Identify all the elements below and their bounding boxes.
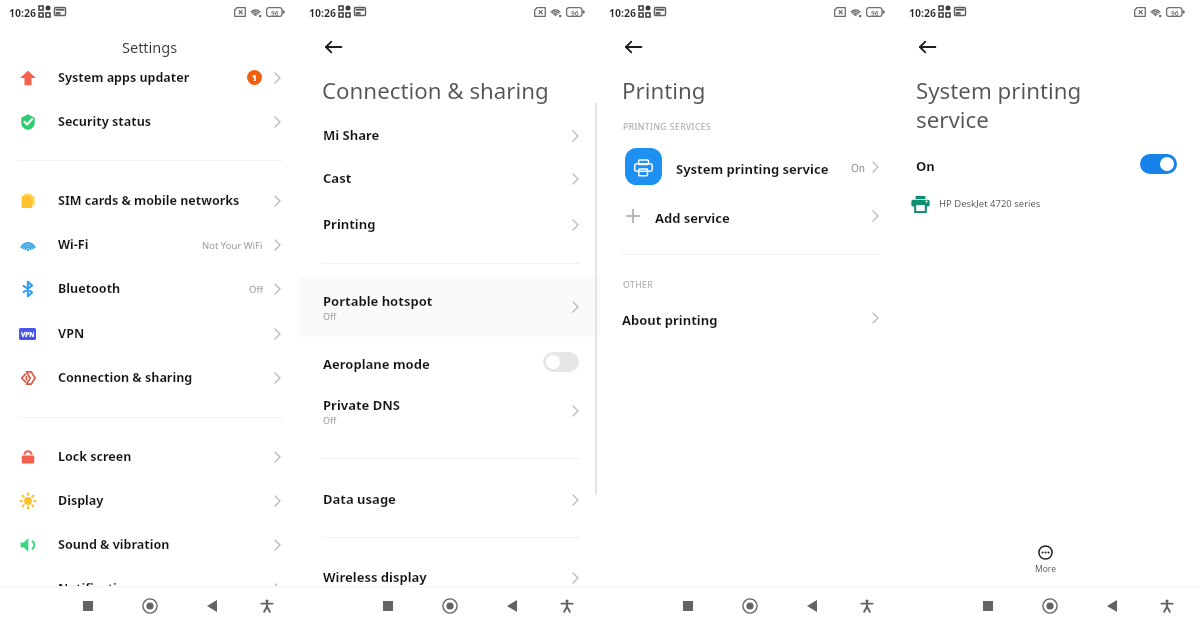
staticText: Not Your WiFi bbox=[202, 239, 263, 252]
staticText: Printing bbox=[323, 215, 376, 233]
staticText: System printing service bbox=[916, 75, 1082, 135]
staticText: 10:26 bbox=[609, 6, 636, 20]
staticText: Off bbox=[249, 283, 263, 296]
staticText: Settings bbox=[122, 37, 178, 57]
staticText: 96 bbox=[571, 9, 579, 18]
button[interactable]: System apps updater bbox=[0, 56, 300, 100]
staticText: Security status bbox=[58, 113, 152, 130]
button[interactable]: Back bbox=[319, 33, 347, 61]
button[interactable]: Recents bbox=[968, 587, 1008, 625]
button[interactable]: Back bbox=[913, 33, 941, 61]
staticText: Wireless display bbox=[323, 568, 427, 586]
button[interactable]: Lock screen bbox=[0, 435, 300, 479]
staticText: System apps updater bbox=[58, 69, 190, 86]
button[interactable]: System printing service bbox=[600, 143, 900, 191]
button[interactable]: Back bbox=[619, 33, 647, 61]
button[interactable]: Home bbox=[1030, 587, 1070, 625]
staticText: VPN bbox=[58, 325, 85, 342]
button[interactable]: Sound & vibration bbox=[0, 523, 300, 567]
staticText: On bbox=[916, 157, 935, 175]
staticText: Printing bbox=[622, 75, 706, 105]
staticText: Private DNS bbox=[323, 396, 401, 414]
staticText: Data usage bbox=[323, 490, 396, 508]
button[interactable]: Display bbox=[0, 479, 300, 523]
staticText: 10:26 bbox=[309, 6, 336, 20]
staticText: OTHER bbox=[623, 279, 653, 291]
staticText: More bbox=[1035, 563, 1056, 575]
button[interactable]: Accessibility bbox=[247, 587, 287, 625]
button[interactable]: VPN bbox=[0, 312, 300, 356]
staticText: Connection & sharing bbox=[322, 75, 549, 105]
button[interactable]: Accessibility bbox=[847, 587, 887, 625]
staticText: Display bbox=[58, 492, 104, 509]
staticText: 96 bbox=[271, 9, 279, 18]
staticText: About printing bbox=[622, 311, 718, 329]
staticText: Cast bbox=[323, 169, 352, 187]
button[interactable]: Home bbox=[430, 587, 470, 625]
button[interactable]: Recents bbox=[668, 587, 708, 625]
staticText: System printing service bbox=[676, 160, 829, 178]
staticText: Off bbox=[323, 414, 337, 426]
button[interactable]: Printing bbox=[300, 203, 600, 247]
staticText: Sound & vibration bbox=[58, 536, 170, 553]
staticText: Add service bbox=[655, 209, 730, 227]
button[interactable]: Bluetooth bbox=[0, 267, 300, 311]
button[interactable]: Back bbox=[492, 587, 532, 625]
button[interactable]: Portable hotspot bbox=[300, 285, 600, 329]
staticText: On bbox=[851, 161, 865, 175]
button[interactable]: Data usage bbox=[300, 478, 600, 522]
button[interactable]: Wireless display bbox=[300, 556, 600, 600]
staticText: PRINTING SERVICES bbox=[623, 121, 712, 133]
button[interactable]: Aeroplane mode bbox=[300, 340, 600, 384]
button[interactable]: Home bbox=[730, 587, 770, 625]
button[interactable]: Connection & sharing bbox=[0, 356, 300, 400]
staticText: Lock screen bbox=[58, 448, 132, 465]
staticText: Wi-Fi bbox=[58, 236, 89, 253]
staticText: 1 bbox=[252, 72, 257, 84]
staticText: Connection & sharing bbox=[58, 369, 193, 386]
button[interactable]: Add service bbox=[600, 194, 900, 238]
button[interactable]: Accessibility bbox=[547, 587, 587, 625]
button[interactable]: Cast bbox=[300, 157, 600, 201]
staticText: Portable hotspot bbox=[323, 292, 433, 310]
staticText: VPN bbox=[21, 330, 35, 339]
staticText: 96 bbox=[871, 9, 879, 18]
button[interactable]: Back bbox=[192, 587, 232, 625]
button[interactable]: Recents bbox=[68, 587, 108, 625]
button[interactable]: Mi Share bbox=[300, 114, 600, 158]
staticText: Off bbox=[323, 310, 337, 322]
button[interactable]: Accessibility bbox=[1147, 587, 1187, 625]
button[interactable]: More bbox=[1026, 545, 1064, 581]
staticText: 10:26 bbox=[9, 6, 36, 20]
button[interactable]: HP DeskJet 4720 series bbox=[900, 188, 1200, 218]
staticText: HP DeskJet 4720 series bbox=[939, 197, 1041, 210]
button[interactable]: SIM cards & mobile networks bbox=[0, 179, 300, 223]
staticText: 10:26 bbox=[909, 6, 936, 20]
button[interactable]: Wi-Fi bbox=[0, 223, 300, 267]
button[interactable]: Back bbox=[1092, 587, 1132, 625]
button[interactable]: Private DNS bbox=[300, 389, 600, 433]
button[interactable]: Home bbox=[130, 587, 170, 625]
button[interactable]: On bbox=[900, 142, 1200, 186]
staticText: Aeroplane mode bbox=[323, 355, 430, 373]
button[interactable]: Notifications bbox=[0, 567, 300, 611]
button[interactable]: Security status bbox=[0, 100, 300, 144]
staticText: Notifications bbox=[58, 580, 140, 597]
staticText: Mi Share bbox=[323, 126, 380, 144]
staticText: Bluetooth bbox=[58, 280, 121, 297]
staticText: 96 bbox=[1171, 9, 1179, 18]
button[interactable]: About printing bbox=[600, 299, 900, 343]
button[interactable]: Back bbox=[792, 587, 832, 625]
button[interactable]: Recents bbox=[368, 587, 408, 625]
staticText: SIM cards & mobile networks bbox=[58, 192, 240, 209]
